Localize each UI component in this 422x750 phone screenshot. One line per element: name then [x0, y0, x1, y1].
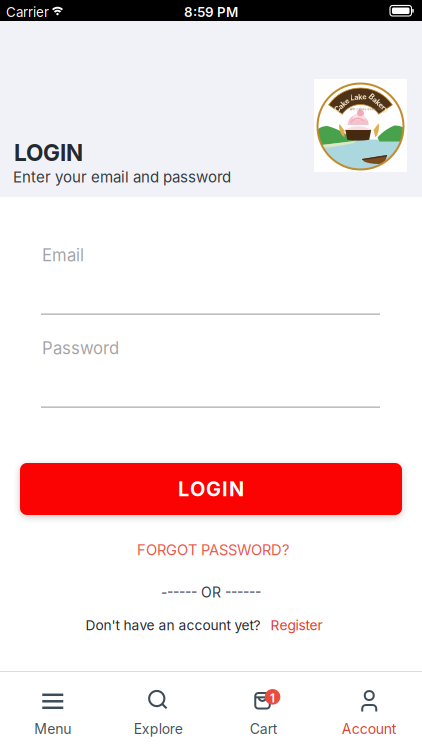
- button[interactable]: Register: [270, 617, 322, 634]
- staticText: with cakes every day: [349, 107, 383, 111]
- button[interactable]: Explore: [105, 675, 211, 747]
- button[interactable]: 1: [211, 675, 316, 747]
- staticText: FORGOT PASSWORD?: [137, 541, 289, 559]
- button[interactable]: Menu: [0, 675, 105, 747]
- button[interactable]: Password: [0, 336, 422, 412]
- staticText: LOGIN: [14, 139, 83, 166]
- staticText: Cake: [333, 101, 350, 110]
- staticText: 1: [270, 691, 275, 705]
- staticText: Password: [42, 338, 119, 358]
- button[interactable]: Account: [316, 675, 422, 747]
- staticText: Cart: [250, 720, 278, 737]
- staticText: Menu: [34, 720, 71, 737]
- staticText: Carrier: [6, 4, 49, 20]
- staticText: Register: [270, 617, 322, 634]
- staticText: ------ OR ------: [161, 584, 261, 601]
- button[interactable]: LOGIN: [20, 463, 402, 515]
- staticText: Account: [342, 720, 397, 737]
- button[interactable]: FORGOT PASSWORD?: [137, 541, 289, 559]
- staticText: Explore: [134, 720, 183, 737]
- staticText: Bakery: [367, 99, 391, 107]
- staticText: 8:59 PM: [184, 4, 238, 20]
- staticText: LOGIN: [178, 477, 244, 501]
- staticText: Enter your email and password: [13, 168, 231, 186]
- staticText: Lake: [350, 93, 366, 101]
- staticText: Email: [42, 245, 84, 265]
- button[interactable]: Email: [0, 242, 422, 318]
- staticText: Don't have an account yet?: [85, 617, 260, 634]
